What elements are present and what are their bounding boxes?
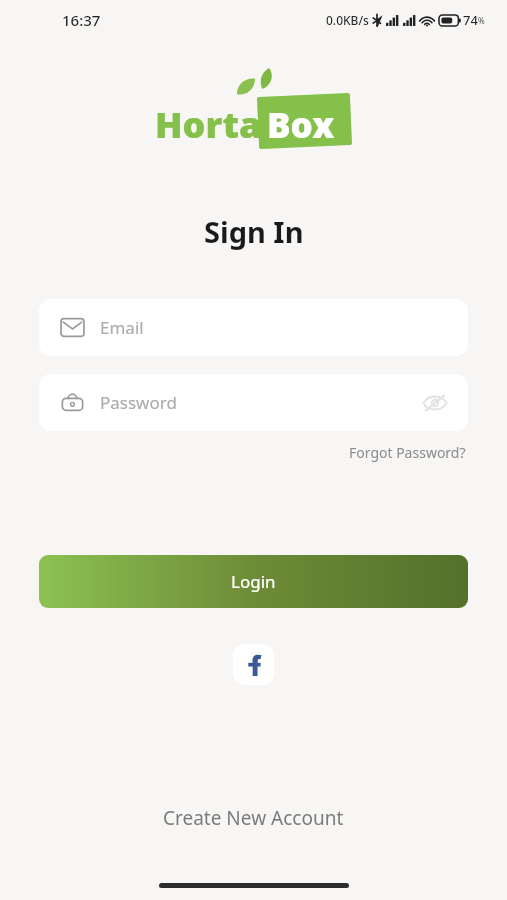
staticText: Password	[100, 391, 422, 414]
button[interactable]: Create New Account	[155, 799, 352, 837]
staticText: Email	[100, 316, 448, 339]
staticText: 0.0KB/s	[326, 12, 369, 28]
button[interactable]: Login	[39, 555, 468, 608]
button[interactable]: Email	[39, 299, 468, 356]
button[interactable]: Password	[39, 374, 468, 431]
staticText: Forgot Password?	[349, 443, 466, 462]
staticText: Sign In	[204, 212, 304, 251]
staticText: Login	[231, 570, 276, 593]
staticText: Box	[267, 101, 335, 149]
staticText: 74	[463, 11, 478, 29]
button[interactable]: Sign in with Facebook	[233, 644, 274, 685]
staticText: Horta	[155, 100, 262, 149]
staticText: %	[478, 15, 485, 26]
staticText: 16:37	[62, 10, 101, 30]
staticText: Create New Account	[163, 805, 344, 831]
button[interactable]: Forgot Password?	[347, 440, 468, 465]
